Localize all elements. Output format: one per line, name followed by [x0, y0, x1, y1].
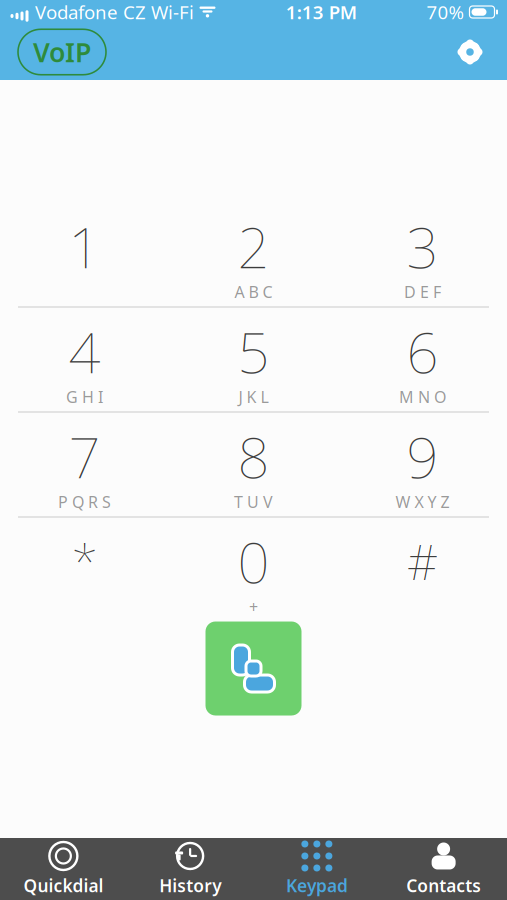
button[interactable]: Settings [451, 33, 489, 71]
button[interactable]: VoIP [18, 29, 106, 75]
button[interactable]: 9 [338, 412, 507, 516]
staticText: * [71, 530, 97, 593]
button[interactable]: Keypad [253, 838, 380, 900]
staticText: 8 [237, 419, 269, 494]
staticText: D E F [404, 281, 441, 302]
staticText: 3 [406, 209, 438, 284]
button[interactable]: 7 [0, 412, 169, 516]
button[interactable]: 5 [169, 307, 338, 411]
staticText: Quickdial [23, 874, 103, 897]
staticText: 1:13 PM [286, 0, 357, 24]
staticText: P Q R S [58, 491, 111, 512]
staticText: 2 [237, 209, 269, 284]
staticText: # [407, 530, 438, 593]
staticText: Contacts [406, 874, 481, 897]
button[interactable]: 8 [169, 412, 338, 516]
staticText: Keypad [286, 874, 348, 897]
staticText: W X Y Z [395, 491, 449, 512]
button[interactable]: 3 [338, 202, 507, 306]
staticText: Vodafone CZ Wi-Fi [35, 0, 194, 24]
staticText: T U V [234, 491, 273, 512]
staticText: 9 [406, 419, 438, 494]
staticText: 1 [68, 209, 100, 284]
button[interactable]: 2 [169, 202, 338, 306]
staticText: 6 [406, 314, 438, 389]
staticText: 0 [237, 524, 269, 599]
staticText: VoIP [33, 34, 91, 70]
staticText: A B C [234, 281, 272, 302]
staticText: History [159, 874, 221, 897]
button[interactable]: * [0, 517, 169, 621]
button[interactable]: History [127, 838, 254, 900]
staticText: + [249, 596, 258, 617]
staticText: J K L [238, 386, 268, 407]
staticText: G H I [66, 386, 103, 407]
staticText: 4 [68, 314, 100, 389]
staticText: M N O [399, 386, 446, 407]
button[interactable]: # [338, 517, 507, 621]
button[interactable]: Call [205, 621, 301, 715]
button[interactable]: 1 [0, 202, 169, 306]
staticText: 5 [237, 314, 269, 389]
staticText: 70% [426, 0, 464, 24]
staticText: 7 [68, 419, 100, 494]
button[interactable]: Quickdial [0, 838, 127, 900]
button[interactable]: Contacts [380, 838, 507, 900]
button[interactable]: 4 [0, 307, 169, 411]
button[interactable]: 6 [338, 307, 507, 411]
button[interactable]: 0 [169, 517, 338, 621]
